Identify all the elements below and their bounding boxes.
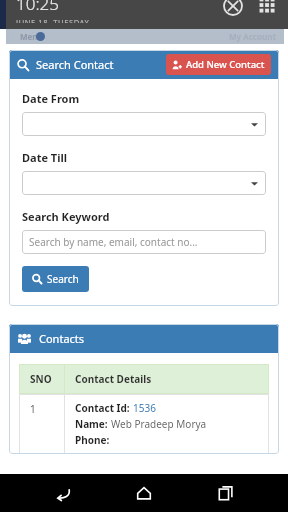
staticText: 1536 xyxy=(133,401,156,415)
staticText: Phone: xyxy=(75,433,110,447)
staticText: Name: xyxy=(75,417,111,431)
staticText: Contact Details xyxy=(75,372,152,386)
staticText: My Account xyxy=(229,31,276,42)
button[interactable]: Clear all notifications xyxy=(222,0,244,17)
button[interactable]: Select date xyxy=(22,171,266,195)
staticText: Date Till xyxy=(22,150,68,165)
staticText: 10:25 xyxy=(16,0,59,15)
button[interactable]: 1 xyxy=(19,394,269,454)
button[interactable]: Quick settings xyxy=(258,0,278,16)
staticText: Search by name, email, contact no... xyxy=(29,235,198,249)
staticText: Search Keyword xyxy=(22,209,110,224)
staticText: Web Pradeep Morya xyxy=(111,417,207,431)
button[interactable]: Search xyxy=(22,266,89,292)
staticText: Add New Contact xyxy=(186,58,265,71)
button[interactable]: Add New Contact xyxy=(166,54,271,75)
button[interactable]: Home xyxy=(125,474,163,512)
staticText: Menu xyxy=(20,31,43,42)
staticText: Contacts xyxy=(39,331,85,346)
staticText: 1 xyxy=(30,402,36,416)
staticText: Contact Id: xyxy=(75,401,133,415)
staticText: Date From xyxy=(22,91,80,106)
button[interactable]: Select date xyxy=(22,112,266,136)
staticText: SNO xyxy=(30,372,52,386)
staticText: Search xyxy=(47,272,79,286)
button[interactable]: Search by name, email, contact no... xyxy=(22,230,266,254)
button[interactable]: Back xyxy=(44,474,82,512)
button[interactable]: Recent apps xyxy=(207,474,245,512)
staticText: Search Contact xyxy=(36,57,114,72)
staticText: JUNE 18, TUESDAY xyxy=(16,17,90,23)
